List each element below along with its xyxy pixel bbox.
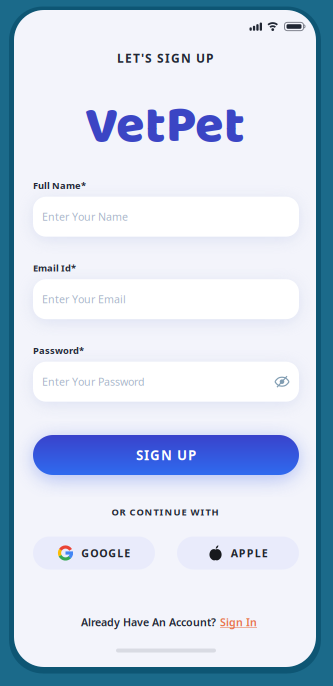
staticText: O R C O N T I N U E W I T H bbox=[111, 506, 218, 518]
staticText: Sign In bbox=[220, 615, 257, 629]
button[interactable]: G O O G L E bbox=[33, 536, 155, 569]
button[interactable]: Enter Your Email bbox=[33, 279, 299, 319]
staticText: Enter Your Password bbox=[42, 375, 145, 389]
staticText: S I G N U P bbox=[136, 446, 196, 464]
button[interactable]: Enter Your Name bbox=[33, 197, 299, 237]
staticText: Password* bbox=[33, 344, 84, 357]
staticText: Enter Your Name bbox=[42, 210, 128, 224]
button[interactable]: Sign In bbox=[220, 615, 257, 629]
button[interactable]: Enter Your Password bbox=[33, 362, 299, 402]
staticText: VetPet bbox=[85, 85, 245, 168]
staticText: G O O G L E bbox=[81, 546, 130, 560]
button[interactable]: A P P L E bbox=[177, 536, 299, 569]
staticText: L E T ' S S I G N U P bbox=[117, 50, 213, 66]
staticText: Email Id* bbox=[33, 262, 76, 274]
staticText: A P P L E bbox=[231, 546, 268, 560]
staticText: Enter Your Email bbox=[42, 292, 126, 306]
staticText: Full Name* bbox=[33, 179, 86, 192]
button[interactable]: S I G N U P bbox=[33, 435, 299, 475]
staticText: Already Have An Account? bbox=[81, 615, 216, 629]
